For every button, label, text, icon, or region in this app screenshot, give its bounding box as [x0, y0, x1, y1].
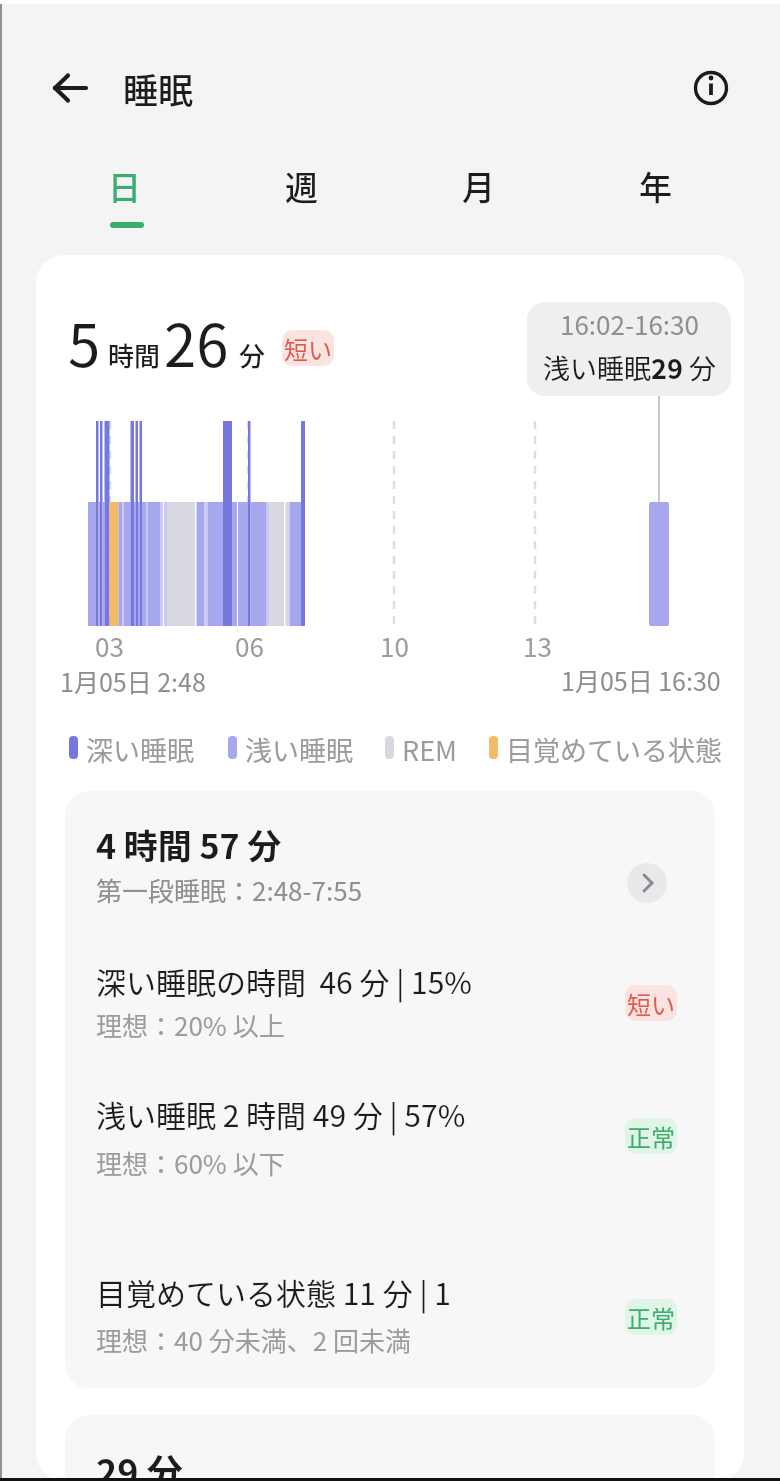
button[interactable]: 日 [36, 158, 213, 214]
button[interactable]: 月 [390, 158, 567, 214]
staticText: 目覚めている状態 11 分 | 1 [96, 1270, 451, 1313]
staticText: 第一段睡眠：2:48-7:55 [96, 871, 363, 909]
staticText: 1月05日 2:48 [60, 663, 206, 699]
staticText: 29 分 [96, 1444, 183, 1481]
staticText: REM [402, 730, 457, 769]
staticText: 短い [284, 331, 332, 366]
staticText: 正常 [627, 1300, 675, 1335]
button[interactable] [65, 800, 715, 930]
button[interactable] [65, 1415, 715, 1481]
staticText: 浅い睡眠 [245, 730, 353, 769]
staticText: 浅い睡眠29 分 [543, 348, 716, 387]
staticText: 深い睡眠 [86, 730, 194, 769]
staticText: 時間 [108, 336, 161, 374]
staticText: 分 [239, 336, 266, 374]
staticText: 日 [108, 162, 141, 210]
button[interactable]: 週 [213, 158, 390, 214]
staticText: 4 時間 57 分 [96, 820, 282, 869]
staticText: 正常 [627, 1119, 675, 1154]
staticText: 短い [627, 986, 675, 1021]
staticText: 週 [285, 162, 318, 210]
staticText: 26 [164, 300, 229, 384]
staticText: 年 [639, 162, 672, 210]
staticText: 理想：20% 以上 [96, 1006, 285, 1044]
button[interactable] [48, 66, 92, 110]
staticText: 目覚めている状態 [506, 730, 722, 769]
button[interactable] [690, 67, 732, 109]
staticText: 浅い睡眠 2 時間 49 分 | 57% [96, 1092, 466, 1135]
staticText: 1月05日 16:30 [561, 662, 721, 698]
button[interactable]: 年 [567, 158, 744, 214]
staticText: 10 [380, 627, 409, 665]
staticText: 5 [68, 300, 101, 384]
staticText: 16:02-16:30 [560, 305, 699, 343]
staticText: 理想：60% 以下 [96, 1144, 285, 1182]
staticText: 月 [462, 162, 495, 210]
staticText: 06 [235, 627, 264, 665]
staticText: 理想：40 分未満、2 回未満 [96, 1321, 411, 1359]
staticText: 深い睡眠の時間 46 分 | 15% [96, 959, 472, 1002]
staticText: 13 [523, 627, 552, 665]
staticText: 03 [95, 627, 124, 665]
staticText: 睡眠 [123, 63, 194, 114]
button[interactable] [627, 863, 667, 903]
